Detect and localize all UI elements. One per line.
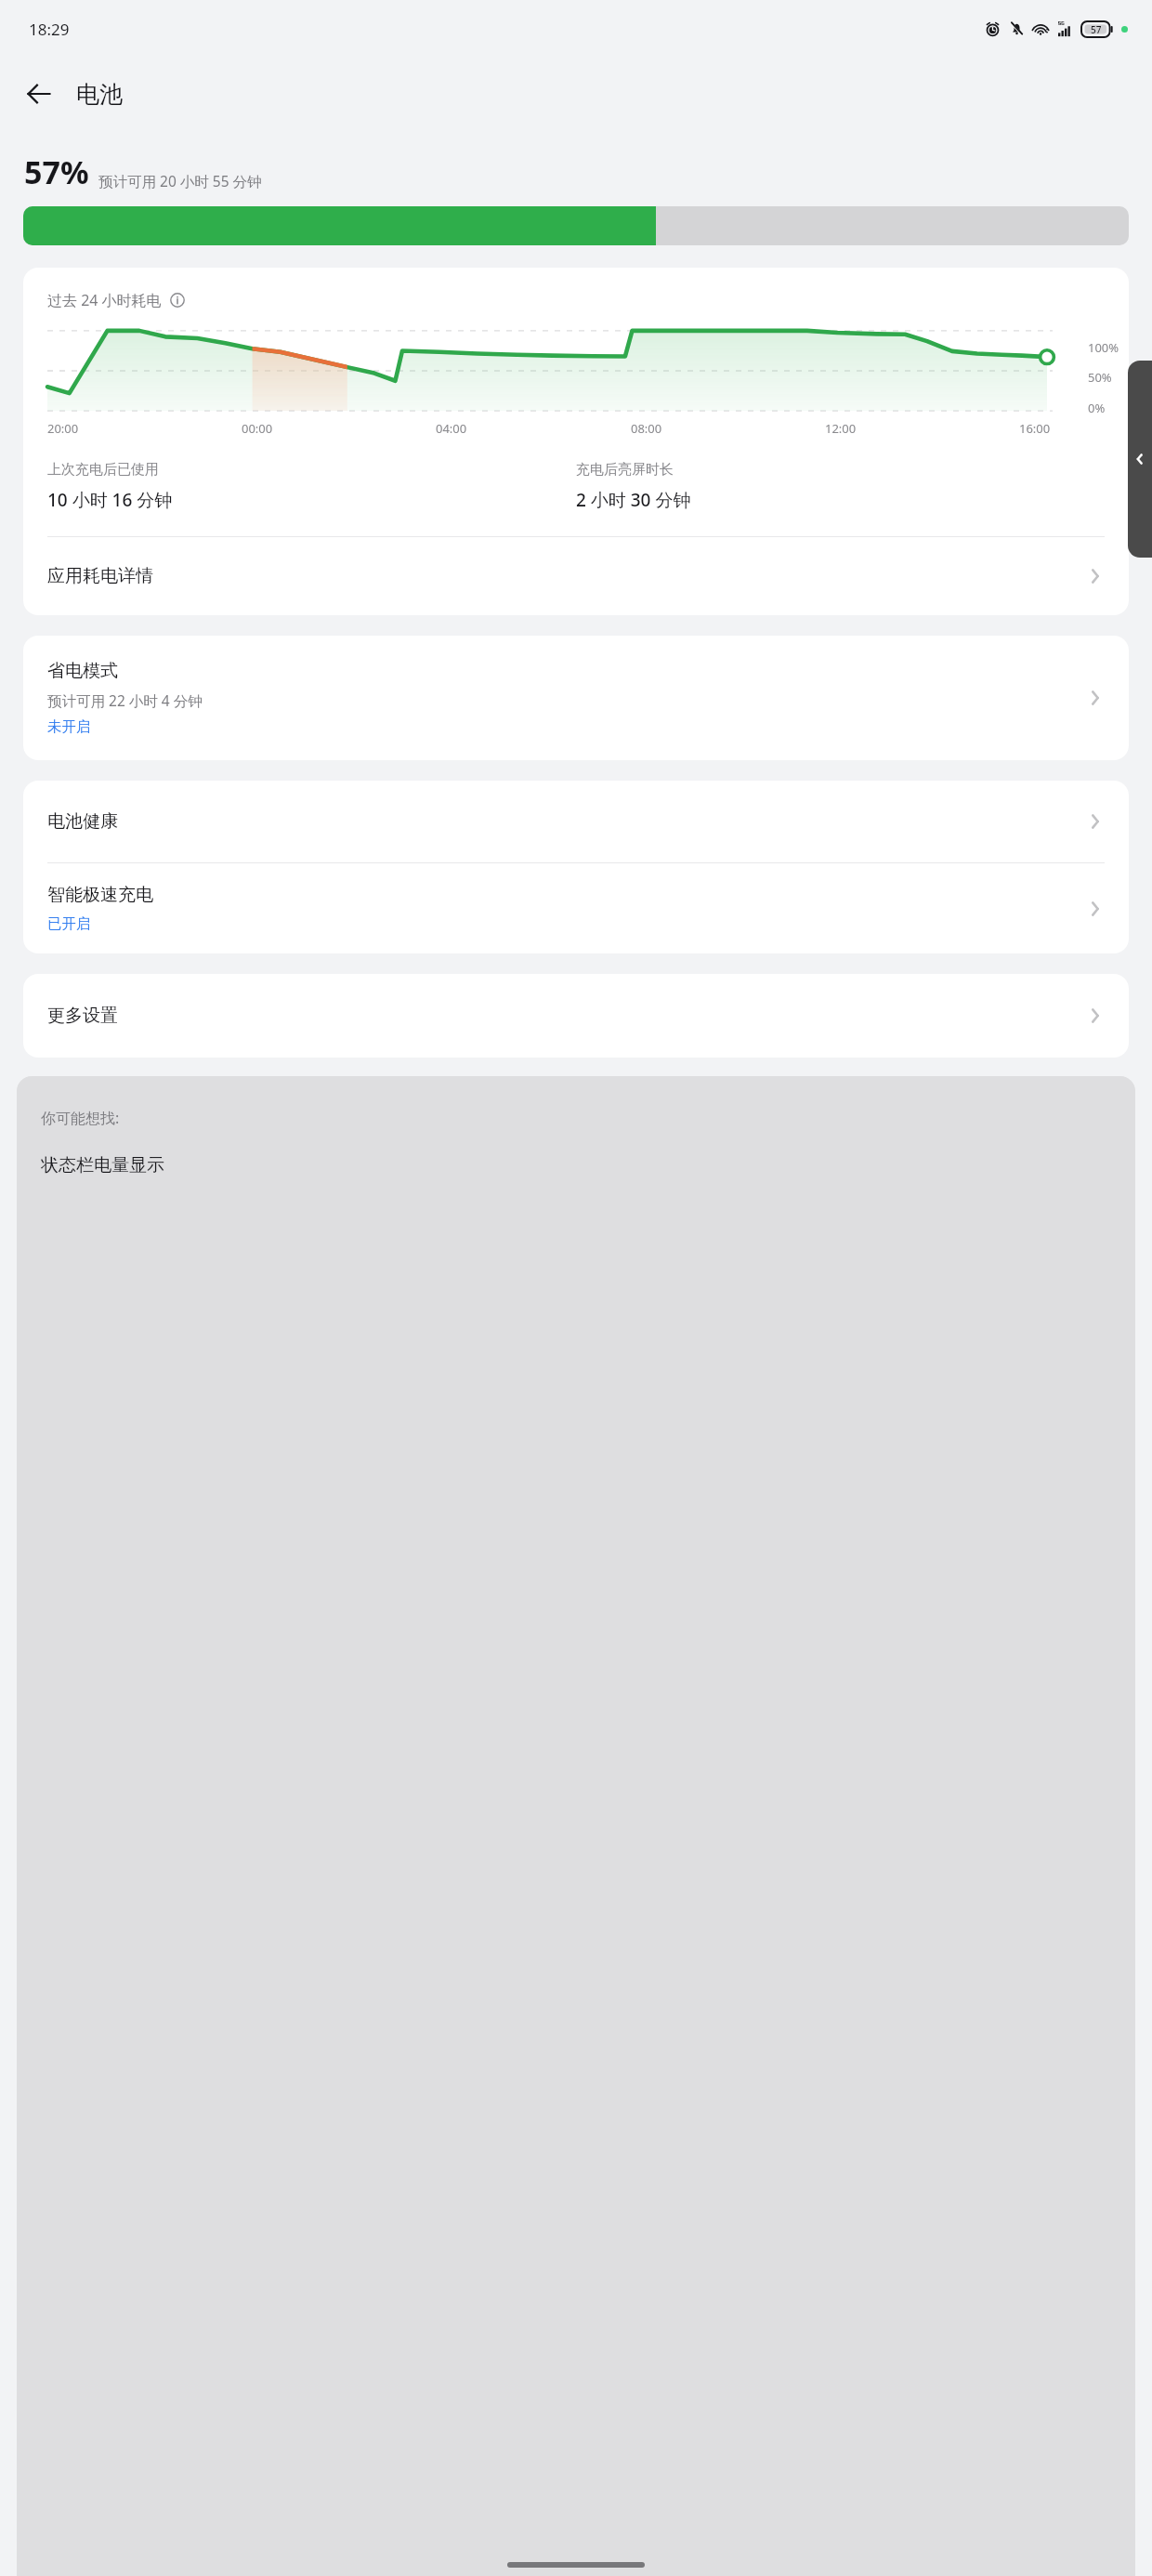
button[interactable]: 过去 24 小时耗电 (47, 288, 185, 312)
staticText: 电池健康 (47, 810, 1084, 833)
staticText: 50% (1088, 369, 1112, 386)
staticText: 2 小时 30 分钟 (576, 488, 691, 512)
staticText: 已开启 (47, 914, 91, 933)
button[interactable]: Back (17, 72, 61, 116)
staticText: 预计可用 22 小时 4 分钟 (47, 690, 203, 710)
button[interactable]: 省电模式 (23, 636, 1129, 760)
button[interactable]: 电池健康 (23, 781, 1129, 862)
staticText: 0% (1088, 400, 1106, 416)
staticText: 更多设置 (47, 1005, 1084, 1027)
button[interactable]: 智能极速充电 (23, 863, 1129, 953)
staticText: 04:00 (436, 420, 467, 437)
staticText: 16:00 (1019, 420, 1051, 437)
staticText: 过去 24 小时耗电 (47, 290, 162, 310)
staticText: 10 小时 16 分钟 (47, 488, 173, 512)
button[interactable]: 状态栏电量显示 (41, 1154, 164, 1176)
button[interactable]: Expand panel (1128, 361, 1152, 558)
staticText: 应用耗电详情 (47, 565, 1084, 587)
staticText: 智能极速充电 (47, 884, 153, 906)
staticText: 100% (1088, 339, 1119, 356)
staticText: 12:00 (825, 420, 857, 437)
button[interactable]: 应用耗电详情 (23, 537, 1129, 615)
staticText: 00:00 (242, 420, 273, 437)
button[interactable]: 更多设置 (23, 974, 1129, 1058)
staticText: 省电模式 (47, 660, 118, 682)
staticText: 充电后亮屏时长 (576, 461, 674, 479)
staticText: 电池 (76, 80, 123, 109)
staticText: 57 (1091, 23, 1102, 36)
staticText: 上次充电后已使用 (47, 461, 159, 479)
staticText: 未开启 (47, 717, 91, 736)
staticText: 57% (24, 151, 89, 193)
staticText: 20:00 (47, 420, 79, 437)
other: Info (170, 293, 185, 308)
staticText: 18:29 (29, 19, 70, 40)
staticText: 你可能想找: (41, 1108, 120, 1128)
staticText: 预计可用 20 小时 55 分钟 (98, 171, 262, 191)
staticText: 08:00 (631, 420, 662, 437)
